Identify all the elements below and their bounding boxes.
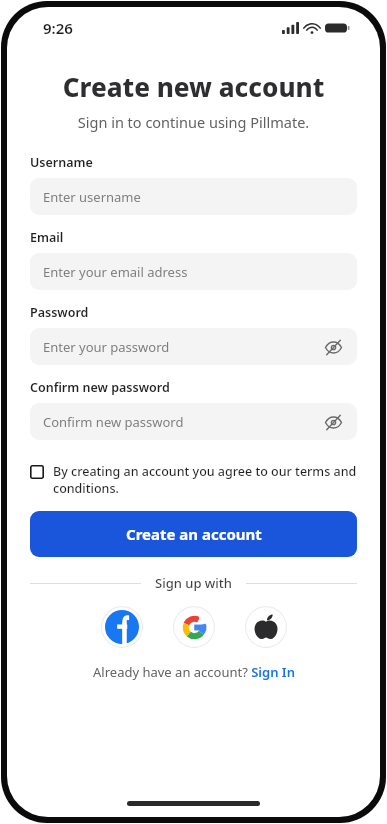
staticText: Confirm new password bbox=[30, 379, 170, 396]
button[interactable]: Enter username bbox=[30, 178, 357, 215]
button[interactable]: Enter your password bbox=[30, 328, 357, 365]
staticText: 9:26 bbox=[43, 18, 73, 38]
staticText: Username bbox=[30, 154, 93, 171]
staticText: Enter your password bbox=[43, 338, 322, 356]
button[interactable]: Sign up with Apple bbox=[245, 606, 287, 648]
button[interactable]: Create an account bbox=[30, 511, 357, 557]
button[interactable]: Sign up with Facebook bbox=[101, 606, 143, 648]
button[interactable]: Show password bbox=[322, 336, 344, 358]
staticText: Sign up with bbox=[155, 574, 232, 592]
staticText: Sign in to continue using Pillmate. bbox=[7, 112, 380, 132]
staticText: Email bbox=[30, 229, 64, 246]
staticText: Create new account bbox=[7, 69, 380, 104]
staticText: Confirm new password bbox=[43, 413, 322, 431]
staticText: Password bbox=[30, 304, 89, 321]
button[interactable]: Confirm new password bbox=[30, 403, 357, 440]
button[interactable]: Show password bbox=[322, 411, 344, 433]
button[interactable]: By creating an account you agree to our … bbox=[30, 462, 357, 498]
staticText: Enter your email adress bbox=[43, 263, 344, 281]
button[interactable]: Enter your email adress bbox=[30, 253, 357, 290]
button[interactable]: Already have an account? Sign In bbox=[93, 663, 295, 681]
button[interactable]: Sign up with Google bbox=[173, 606, 215, 648]
staticText: By creating an account you agree to our … bbox=[53, 463, 357, 497]
staticText: Enter username bbox=[43, 188, 344, 206]
staticText: Create an account bbox=[126, 524, 262, 544]
